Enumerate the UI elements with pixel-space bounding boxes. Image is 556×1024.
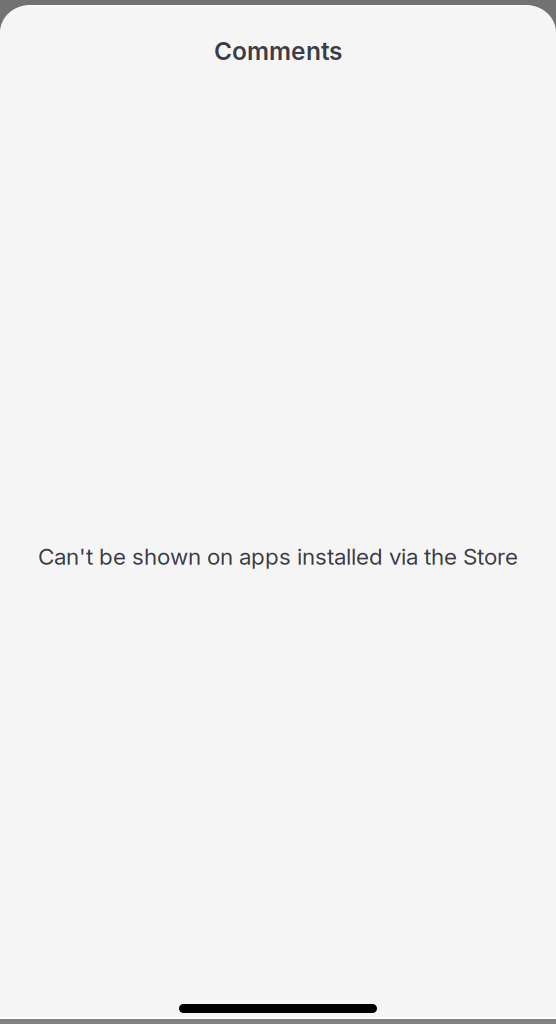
staticText: Can't be shown on apps installed via the… [38, 543, 518, 570]
staticText: Comments [214, 36, 342, 66]
